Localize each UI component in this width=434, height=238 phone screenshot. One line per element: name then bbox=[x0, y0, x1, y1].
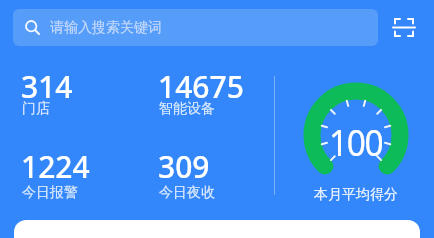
button[interactable] bbox=[14, 220, 420, 238]
staticText: 今日报警 bbox=[22, 184, 78, 202]
staticText: 今日夜收 bbox=[159, 184, 215, 202]
staticText: 门店 bbox=[22, 100, 50, 118]
staticText: 100 bbox=[329, 118, 383, 164]
button[interactable]: 请输入搜索关键词 bbox=[13, 9, 378, 46]
staticText: 本月平均得分 bbox=[314, 186, 398, 202]
staticText: 1224 bbox=[21, 146, 90, 187]
staticText: 309 bbox=[158, 146, 210, 187]
staticText: 14675 bbox=[158, 66, 244, 107]
staticText: 智能设备 bbox=[159, 100, 215, 118]
staticText: 请输入搜索关键词 bbox=[50, 19, 162, 37]
button[interactable] bbox=[390, 14, 418, 40]
staticText: 314 bbox=[21, 66, 73, 107]
